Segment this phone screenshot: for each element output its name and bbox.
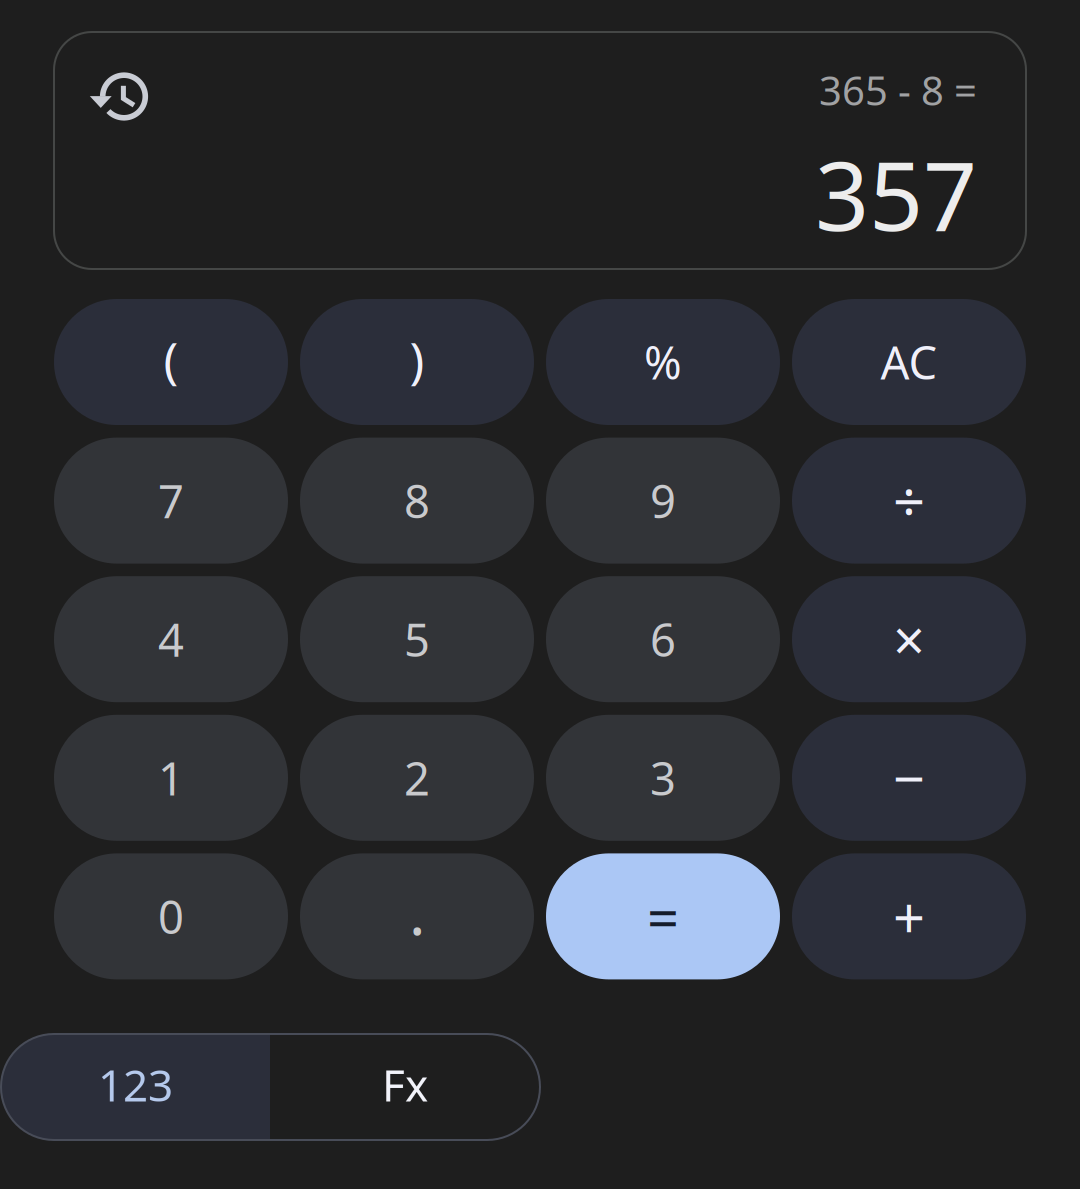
staticText: +: [893, 879, 925, 954]
staticText: 123: [98, 1055, 173, 1114]
staticText: ÷: [893, 463, 925, 538]
staticText: (: [163, 326, 178, 392]
button[interactable]: 123: [1, 1034, 270, 1140]
button[interactable]: 0: [54, 853, 288, 979]
button[interactable]: 8: [300, 438, 534, 564]
button[interactable]: 3: [546, 715, 780, 841]
button[interactable]: %: [546, 299, 780, 425]
button[interactable]: 7: [54, 438, 288, 564]
button[interactable]: (: [54, 299, 288, 425]
button[interactable]: History: [76, 48, 172, 144]
staticText: 5: [404, 609, 430, 669]
staticText: 3: [650, 748, 676, 808]
button[interactable]: .: [300, 853, 534, 979]
button[interactable]: Fx: [270, 1034, 540, 1140]
staticText: 1: [158, 748, 184, 808]
button[interactable]: ×: [792, 576, 1026, 702]
staticText: %: [644, 332, 682, 392]
button[interactable]: =: [546, 853, 780, 979]
button[interactable]: −: [792, 715, 1026, 841]
button[interactable]: ÷: [792, 438, 1026, 564]
staticText: 2: [404, 748, 430, 808]
staticText: AC: [880, 332, 937, 392]
button[interactable]: AC: [792, 299, 1026, 425]
button[interactable]: +: [792, 853, 1026, 979]
button[interactable]: 9: [546, 438, 780, 564]
staticText: 8: [404, 470, 430, 531]
staticText: ×: [893, 602, 925, 676]
staticText: 7: [158, 470, 184, 531]
staticText: 357: [815, 131, 977, 257]
staticText: Fx: [382, 1055, 428, 1114]
button[interactable]: 6: [546, 576, 780, 702]
staticText: .: [409, 871, 425, 952]
button[interactable]: ): [300, 299, 534, 425]
staticText: −: [893, 741, 925, 815]
button[interactable]: 1: [54, 715, 288, 841]
staticText: 365 - 8 =: [819, 63, 977, 116]
staticText: 0: [158, 886, 184, 946]
staticText: 4: [158, 609, 184, 669]
button[interactable]: 4: [54, 576, 288, 702]
staticText: 9: [650, 470, 676, 531]
button[interactable]: 2: [300, 715, 534, 841]
staticText: =: [647, 879, 679, 954]
staticText: ): [409, 326, 424, 392]
button[interactable]: 5: [300, 576, 534, 702]
staticText: 6: [650, 609, 676, 669]
